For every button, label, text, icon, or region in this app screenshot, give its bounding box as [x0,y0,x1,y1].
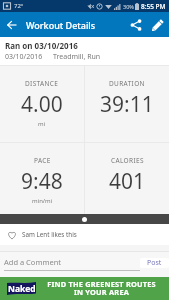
staticText: Post [147,258,162,268]
button[interactable]: PACE [0,143,84,214]
button[interactable]: Back [0,13,24,37]
staticText: 30% [123,3,134,10]
button[interactable]: Edit [147,14,169,36]
staticText: 401 [109,167,146,196]
button[interactable]: Post [140,258,169,268]
staticText: 4.00 [21,90,63,119]
button[interactable]: Share [125,14,147,36]
staticText: Ran on 03/10/2016 [5,40,78,51]
staticText: mi [38,120,46,128]
staticText: Workout Details [26,19,96,31]
staticText: Add a Comment [4,257,61,267]
staticText: Treadmill, Run [53,52,101,62]
staticText: 39:11 [100,90,154,119]
staticText: PACE [34,156,51,165]
staticText: 03/10/2016 [5,52,43,62]
staticText: FIND THE GREENEST ROUTES IN YOUR AREA [47,279,156,298]
staticText: 9:48 [21,167,63,196]
button[interactable]: Add a Comment [4,257,140,271]
staticText: min/mi [32,197,53,205]
staticText: 8:55 PM [141,2,166,11]
staticText: CALORIES [111,156,144,165]
staticText: 72° [14,2,24,10]
staticText: Sam Lent likes this [22,230,77,239]
button[interactable]: Sam Lent likes this [0,224,169,245]
staticText: Naked [8,283,36,295]
button[interactable]: DURATION [85,66,169,142]
button[interactable]: Naked [0,277,169,300]
staticText: DISTANCE [25,79,59,88]
button[interactable]: DISTANCE [0,66,84,142]
staticText: DURATION [109,79,145,88]
button[interactable]: CALORIES [85,143,169,214]
